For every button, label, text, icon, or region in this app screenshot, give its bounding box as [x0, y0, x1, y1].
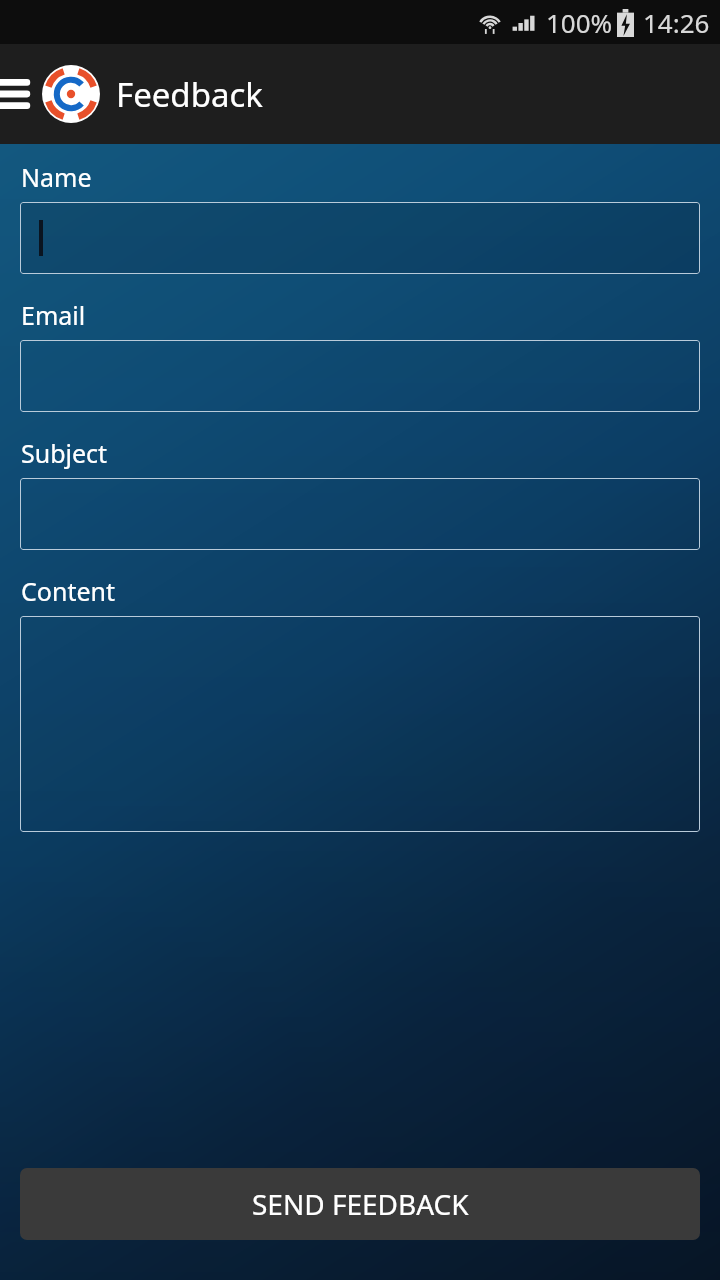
button[interactable]: App logo	[40, 63, 102, 125]
button[interactable]: Text input field	[20, 616, 700, 832]
staticText: SEND FEEDBACK	[252, 1185, 469, 1223]
button[interactable]: Open navigation drawer	[0, 44, 34, 144]
staticText: Content	[21, 574, 115, 608]
staticText: 100%	[546, 5, 613, 40]
staticText: Feedback	[116, 72, 263, 117]
button[interactable]: Text input field	[20, 340, 700, 412]
button[interactable]: Text input field	[20, 202, 700, 274]
staticText: Email	[21, 298, 86, 332]
staticText: Name	[21, 160, 92, 194]
staticText: Subject	[21, 436, 108, 470]
button[interactable]: Text input field	[20, 478, 700, 550]
staticText: 14:26	[643, 5, 710, 40]
button[interactable]: SEND FEEDBACK	[20, 1168, 700, 1240]
